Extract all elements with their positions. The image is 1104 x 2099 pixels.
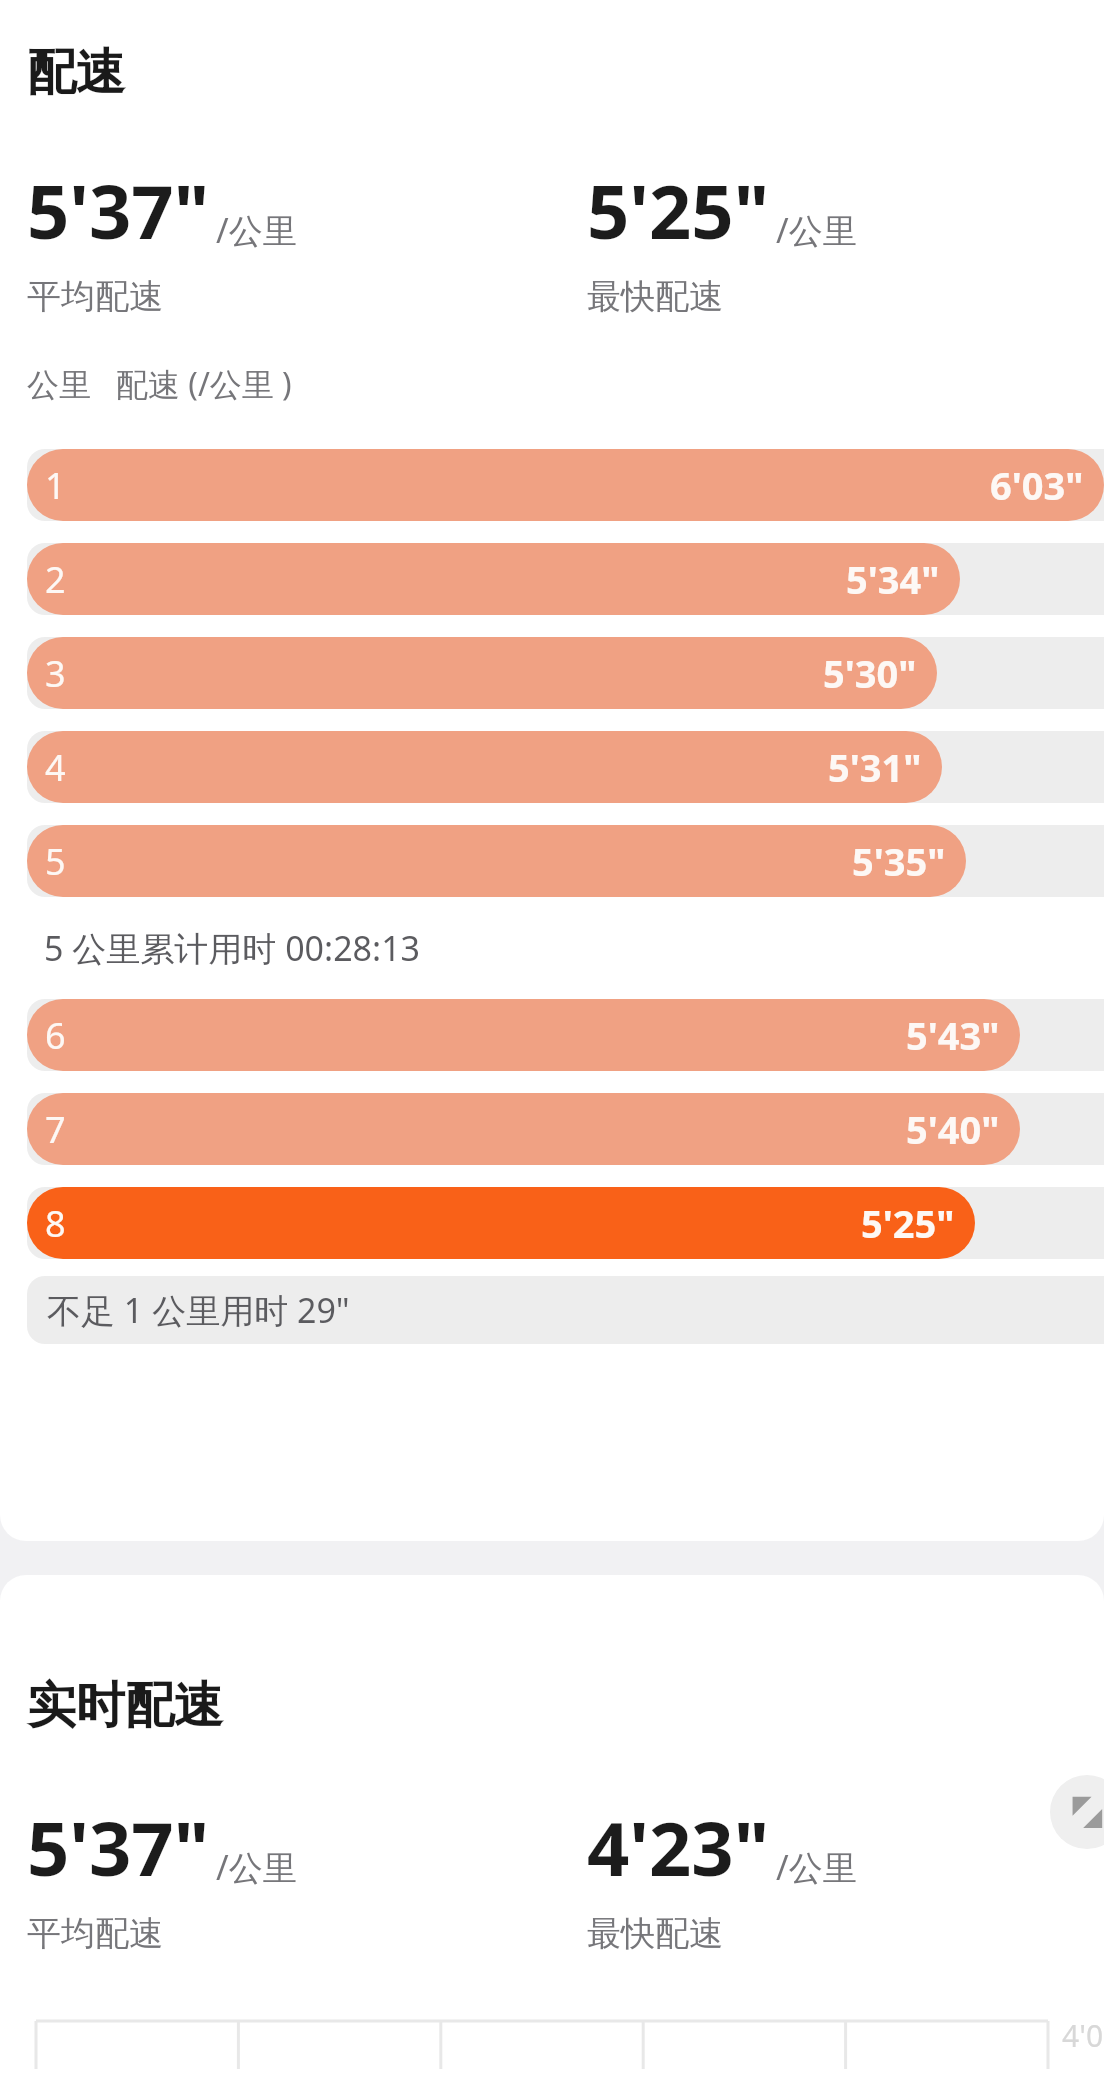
staticText: 最快配速 bbox=[587, 1912, 723, 1955]
button[interactable]: 2 bbox=[0, 532, 1104, 626]
staticText: 3 bbox=[45, 649, 66, 698]
staticText: 5'43" bbox=[906, 1009, 1000, 1061]
staticText: 5'40" bbox=[906, 1103, 1000, 1155]
staticText: 7 bbox=[45, 1105, 66, 1154]
button[interactable]: 6 bbox=[0, 988, 1104, 1082]
button[interactable]: 3 bbox=[0, 626, 1104, 720]
staticText: 8 bbox=[45, 1199, 66, 1248]
staticText: 5 公里累计用时 00:28:13 bbox=[44, 925, 421, 971]
staticText: 5'25" bbox=[587, 160, 770, 261]
staticText: 5'35" bbox=[852, 835, 946, 887]
button[interactable]: 8 bbox=[0, 1176, 1104, 1270]
staticText: 平均配速 bbox=[27, 1912, 163, 1955]
staticText: 1 bbox=[45, 461, 66, 510]
staticText: 5'34" bbox=[846, 553, 940, 605]
button[interactable]: 4 bbox=[0, 720, 1104, 814]
staticText: /公里 bbox=[216, 207, 297, 253]
staticText: /公里 bbox=[776, 1844, 857, 1890]
staticText: /公里 bbox=[776, 207, 857, 253]
staticText: 平均配速 bbox=[27, 275, 163, 318]
staticText: 公里 配速 (/公里 ) bbox=[27, 362, 292, 406]
staticText: 5'31" bbox=[828, 741, 922, 793]
staticText: 5'25" bbox=[861, 1197, 955, 1249]
staticText: 不足 1 公里用时 29" bbox=[47, 1287, 350, 1333]
staticText: 5'37" bbox=[27, 1797, 210, 1898]
staticText: 5 bbox=[45, 837, 66, 886]
staticText: /公里 bbox=[216, 1844, 297, 1890]
button[interactable]: Expand bbox=[1050, 1775, 1104, 1849]
staticText: 2 bbox=[45, 555, 66, 604]
button[interactable]: 1 bbox=[0, 438, 1104, 532]
staticText: 最快配速 bbox=[587, 275, 723, 318]
staticText: 4'0 bbox=[1062, 2015, 1104, 2056]
staticText: 实时配速 bbox=[27, 1675, 223, 1737]
staticText: 6 bbox=[45, 1011, 66, 1060]
staticText: 4 bbox=[45, 743, 66, 792]
staticText: 5'30" bbox=[823, 647, 917, 699]
staticText: 6'03" bbox=[990, 459, 1084, 511]
staticText: 5'37" bbox=[27, 160, 210, 261]
staticText: 配速 bbox=[27, 42, 125, 104]
button[interactable]: 7 bbox=[0, 1082, 1104, 1176]
staticText: 4'23" bbox=[587, 1797, 770, 1898]
button[interactable]: 5 bbox=[0, 814, 1104, 908]
